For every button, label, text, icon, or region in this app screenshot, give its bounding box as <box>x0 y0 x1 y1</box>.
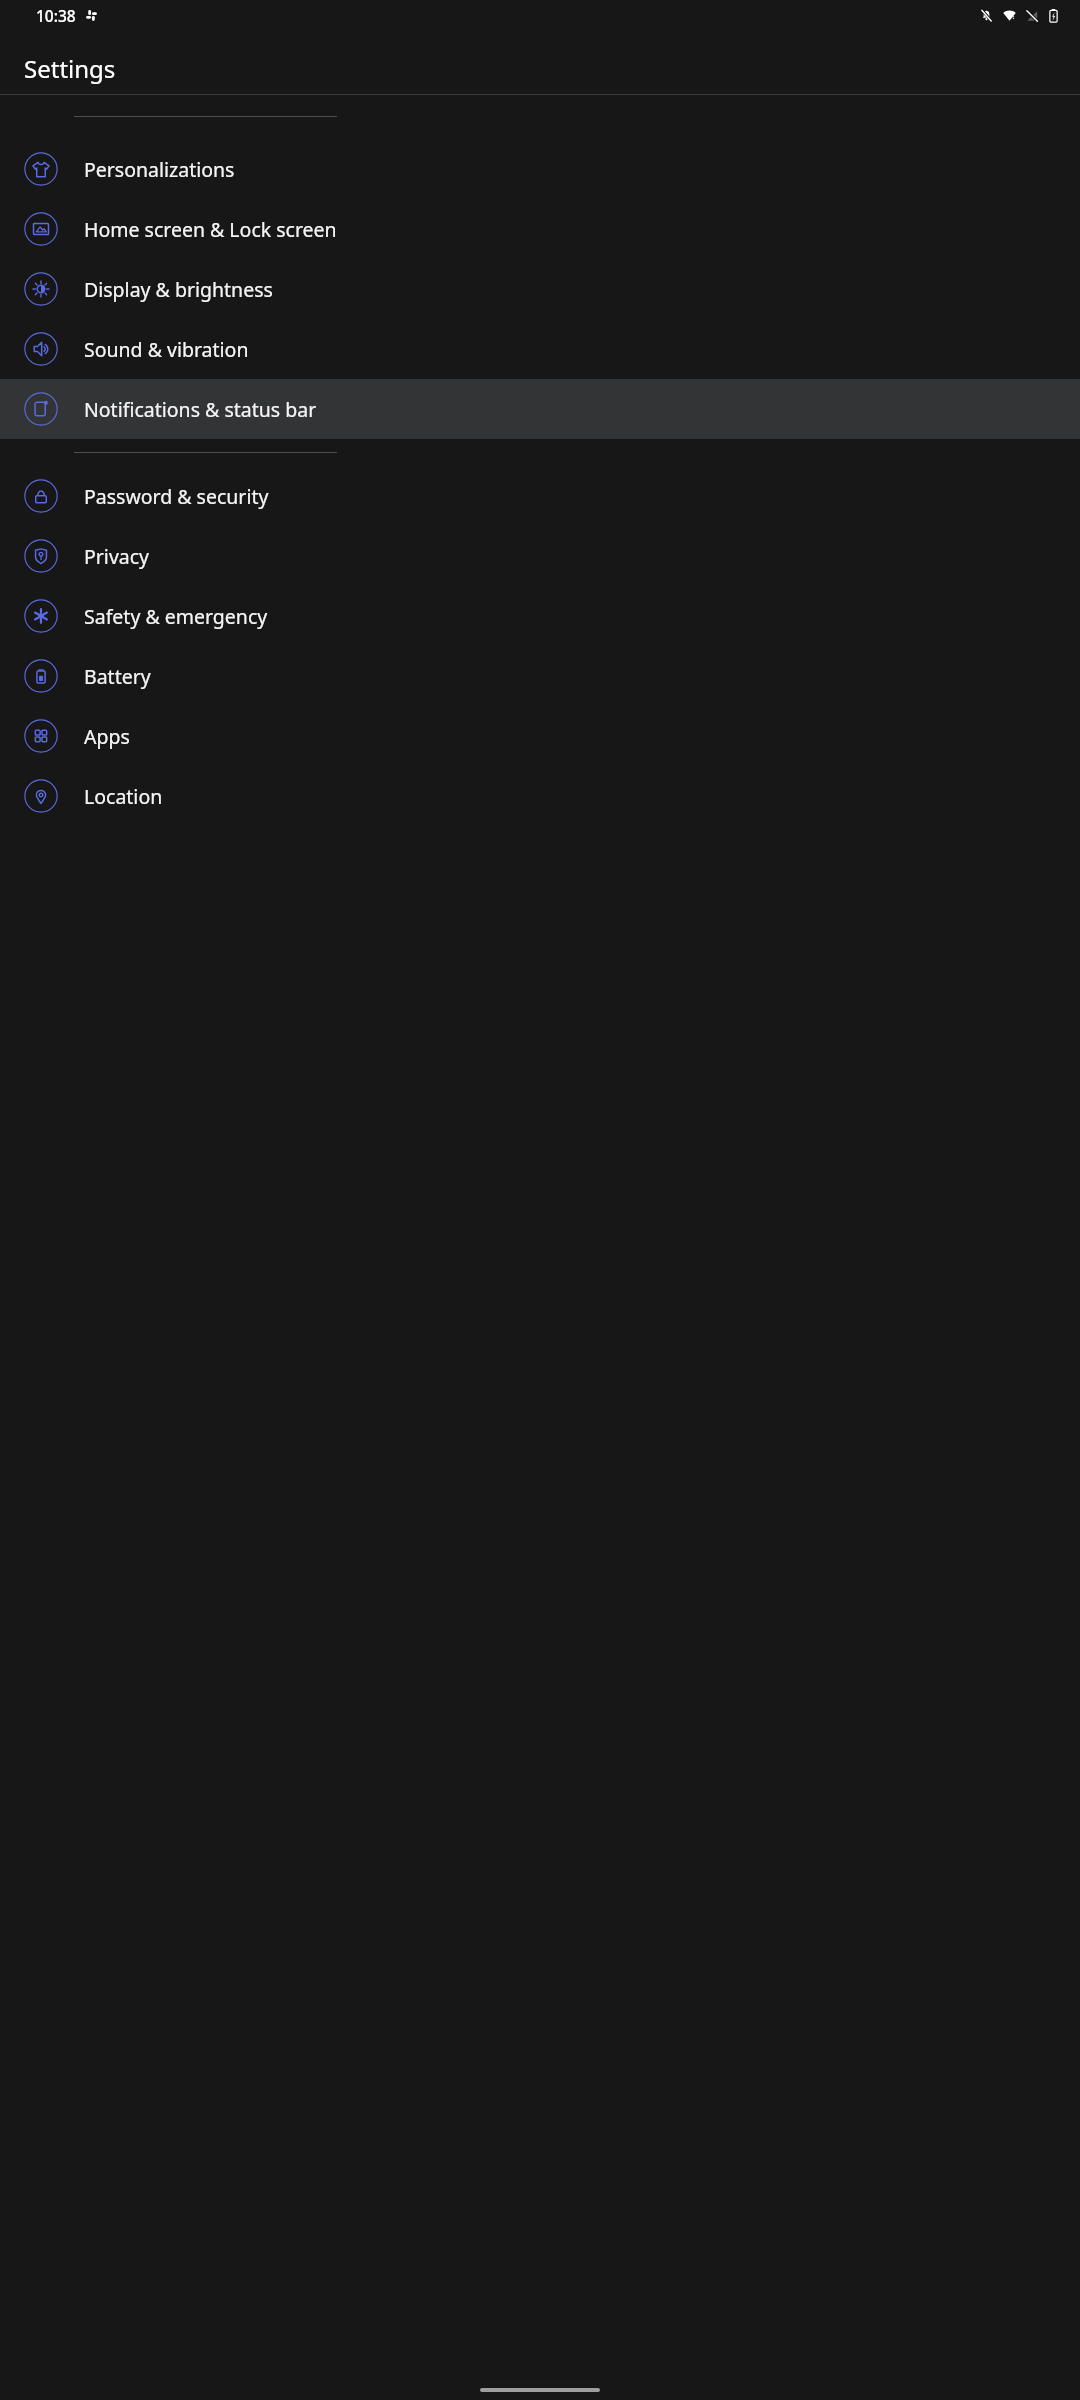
staticText: Display & brightness <box>84 276 273 303</box>
staticText: Safety & emergency <box>84 603 268 630</box>
button[interactable]: Location <box>0 766 1080 826</box>
staticText: Settings <box>24 52 116 85</box>
other: Battery charging <box>1048 8 1059 23</box>
button[interactable]: Password & security <box>0 466 1080 526</box>
button[interactable]: Apps <box>0 706 1080 766</box>
staticText: Privacy <box>84 543 150 570</box>
other: No signal <box>1026 10 1038 22</box>
button[interactable]: Home screen & Lock screen <box>0 199 1080 259</box>
staticText: Sound & vibration <box>84 336 249 363</box>
staticText: Location <box>84 783 163 810</box>
staticText: Battery <box>84 663 151 690</box>
button[interactable]: Notifications & status bar <box>0 379 1080 439</box>
button[interactable]: Sound & vibration <box>0 319 1080 379</box>
staticText: Notifications & status bar <box>84 396 317 423</box>
button[interactable]: Privacy <box>0 526 1080 586</box>
staticText: 10:38 <box>36 5 76 26</box>
staticText: Home screen & Lock screen <box>84 216 337 243</box>
button[interactable]: Battery <box>0 646 1080 706</box>
staticText: Apps <box>84 723 130 750</box>
button[interactable]: Personalizations <box>0 139 1080 199</box>
staticText: Personalizations <box>84 156 235 183</box>
other: Notifications muted <box>980 9 993 22</box>
button[interactable]: Safety & emergency <box>0 586 1080 646</box>
button[interactable]: Display & brightness <box>0 259 1080 319</box>
other: Wi-Fi <box>1003 9 1016 22</box>
staticText: Password & security <box>84 483 269 510</box>
